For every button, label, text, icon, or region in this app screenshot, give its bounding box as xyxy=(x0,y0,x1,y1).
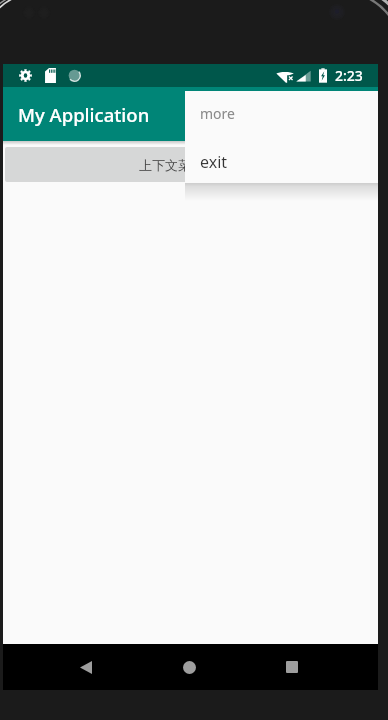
button[interactable]: more xyxy=(185,91,378,136)
staticText: more xyxy=(200,104,235,123)
button[interactable]: exit xyxy=(185,137,378,183)
other: Settings xyxy=(19,69,32,82)
staticText: exit xyxy=(200,151,228,173)
button[interactable]: Back xyxy=(58,644,114,690)
button[interactable]: Home xyxy=(161,644,217,690)
staticText: My Application xyxy=(18,102,150,127)
other: SD card xyxy=(44,68,57,83)
staticText: 2:23 xyxy=(335,66,363,85)
button[interactable]: 上下文菜单的演示 xyxy=(5,147,376,182)
staticText: 上下文菜单的演示 xyxy=(139,157,243,173)
button[interactable]: Recent apps xyxy=(264,644,320,690)
